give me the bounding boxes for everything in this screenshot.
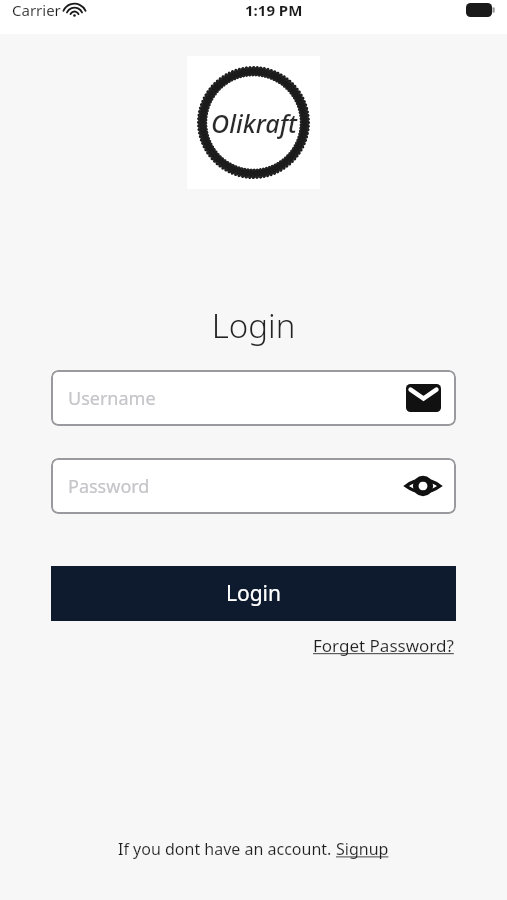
staticText: Carrier — [12, 0, 61, 20]
staticText: Password — [68, 474, 150, 499]
staticText: Login — [0, 303, 507, 348]
button[interactable]: Username — [51, 370, 456, 426]
button[interactable]: Login — [51, 566, 456, 621]
button[interactable]: Email — [403, 378, 443, 418]
button[interactable]: Password — [51, 458, 456, 514]
button[interactable]: Forget Password? — [311, 632, 456, 659]
button[interactable]: Signup — [336, 838, 389, 860]
staticText: If you dont have an account. — [118, 838, 336, 860]
staticText: 1:19 PM — [245, 0, 303, 20]
staticText: Username — [68, 386, 156, 411]
staticText: Forget Password? — [313, 634, 454, 657]
staticText: Signup — [336, 838, 389, 860]
button[interactable]: Show password — [403, 466, 443, 506]
staticText: Olikraft — [211, 106, 297, 140]
staticText: Login — [226, 579, 282, 608]
